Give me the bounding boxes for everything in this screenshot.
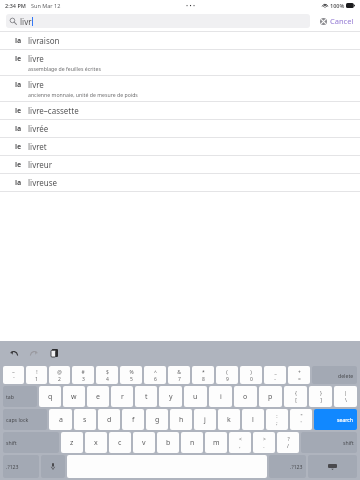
staticText: / — [287, 443, 289, 450]
button[interactable]: : — [266, 409, 288, 430]
button[interactable]: Paste — [46, 345, 62, 361]
button[interactable]: Clear text — [316, 14, 330, 28]
button[interactable]: w — [63, 386, 85, 407]
button[interactable]: n — [181, 432, 203, 453]
staticText: $ — [106, 369, 109, 376]
staticText: ; — [276, 420, 278, 427]
button[interactable]: ( — [216, 366, 238, 384]
staticText: 100% — [330, 2, 345, 9]
button[interactable]: * — [192, 366, 214, 384]
button[interactable]: | — [334, 386, 357, 407]
button[interactable]: < — [229, 432, 251, 453]
button[interactable]: le — [0, 50, 360, 75]
staticText: • • • — [186, 2, 196, 9]
staticText: e — [96, 392, 100, 402]
staticText: shift — [6, 439, 17, 446]
button[interactable]: le — [0, 138, 360, 155]
button[interactable]: > — [253, 432, 275, 453]
button[interactable]: la — [0, 32, 360, 49]
staticText: n — [190, 438, 195, 448]
button[interactable]: y — [159, 386, 182, 407]
staticText: le — [15, 142, 22, 152]
staticText: la — [15, 124, 22, 134]
staticText: ^ — [154, 369, 157, 376]
staticText: ? — [287, 436, 290, 443]
button[interactable]: m — [205, 432, 227, 453]
button[interactable]: d — [98, 409, 120, 430]
button[interactable]: k — [218, 409, 240, 430]
staticText: j — [204, 415, 206, 425]
button[interactable]: ! — [26, 366, 47, 384]
button[interactable]: @ — [49, 366, 70, 384]
staticText: x — [94, 438, 98, 448]
button[interactable]: " — [290, 409, 312, 430]
staticText: 3 — [82, 376, 85, 383]
staticText: 0 — [250, 376, 253, 383]
staticText: " — [300, 413, 303, 420]
button[interactable]: h — [170, 409, 192, 430]
button[interactable]: search — [314, 409, 357, 430]
button[interactable]: p — [259, 386, 282, 407]
button[interactable]: $ — [96, 366, 118, 384]
button[interactable]: Undo — [6, 345, 22, 361]
button[interactable]: & — [168, 366, 190, 384]
button[interactable]: g — [146, 409, 168, 430]
staticText: p — [268, 392, 273, 402]
button[interactable]: b — [157, 432, 179, 453]
button[interactable]: j — [194, 409, 216, 430]
button[interactable]: ? — [277, 432, 299, 453]
button[interactable]: o — [234, 386, 257, 407]
button[interactable]: livr — [10, 14, 306, 28]
button[interactable]: i — [209, 386, 232, 407]
button[interactable]: u — [184, 386, 207, 407]
staticText: Sun Mar 12 — [31, 2, 61, 9]
button[interactable]: shift — [3, 432, 59, 453]
staticText: livret — [28, 141, 47, 152]
button[interactable]: la — [0, 174, 360, 191]
staticText: < — [239, 436, 242, 443]
button[interactable]: la — [0, 76, 360, 101]
button[interactable]: tab — [3, 386, 37, 407]
button[interactable]: l — [242, 409, 264, 430]
button[interactable]: caps lock — [3, 409, 47, 430]
button[interactable]: e — [87, 386, 109, 407]
button[interactable]: v — [133, 432, 155, 453]
button[interactable]: a — [49, 409, 72, 430]
button[interactable]: s — [74, 409, 96, 430]
button[interactable]: .?123 — [269, 455, 306, 478]
button[interactable]: r — [111, 386, 133, 407]
button[interactable]: le — [0, 102, 360, 119]
button[interactable]: } — [309, 386, 332, 407]
button[interactable]: delete — [312, 366, 357, 384]
button[interactable]: { — [284, 386, 307, 407]
button[interactable]: z — [61, 432, 83, 453]
button[interactable]: + — [288, 366, 310, 384]
button[interactable]: t — [135, 386, 157, 407]
button[interactable]: ^ — [144, 366, 166, 384]
button[interactable]: q — [39, 386, 61, 407]
button[interactable]: le — [0, 156, 360, 173]
staticText: = — [298, 376, 301, 383]
staticText: v — [142, 438, 146, 448]
button[interactable]: la — [0, 120, 360, 137]
button[interactable]: f — [122, 409, 144, 430]
staticText: 5 — [130, 376, 133, 383]
button[interactable]: _ — [264, 366, 286, 384]
staticText: ancienne monnaie, unité de mesure de poi… — [28, 91, 138, 98]
button[interactable]: Hide keyboard — [308, 455, 357, 478]
staticText: \ — [345, 397, 347, 404]
staticText: livre — [28, 53, 44, 64]
button[interactable]: Cancel — [330, 11, 354, 31]
button[interactable]: ~ — [3, 366, 24, 384]
button[interactable]: ) — [240, 366, 262, 384]
button[interactable]: shift — [301, 432, 357, 453]
button[interactable]: x — [85, 432, 107, 453]
button[interactable]: .?123 — [3, 455, 39, 478]
button[interactable]: c — [109, 432, 131, 453]
staticText: u — [193, 392, 198, 402]
button[interactable]: Dictate — [41, 455, 65, 478]
button[interactable]: Redo — [26, 345, 42, 361]
button[interactable]: # — [72, 366, 94, 384]
button[interactable]: % — [120, 366, 142, 384]
